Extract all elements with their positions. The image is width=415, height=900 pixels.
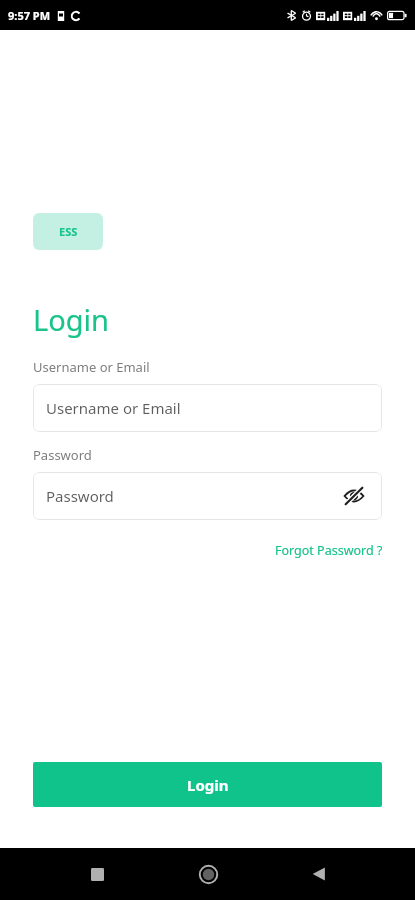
button[interactable]: Recent apps	[78, 855, 116, 893]
staticText: 9:57 PM	[8, 8, 51, 23]
staticText: Login	[33, 300, 109, 339]
staticText: Password	[33, 446, 92, 464]
button[interactable]: Show password	[339, 481, 369, 511]
button[interactable]: Password	[33, 472, 382, 520]
staticText: Forgot Password ?	[275, 542, 383, 559]
staticText: ESS	[59, 224, 78, 239]
staticText: Username or Email	[33, 358, 150, 376]
button[interactable]: Home	[189, 855, 227, 893]
staticText: Password	[46, 486, 339, 506]
button[interactable]: Back	[300, 855, 338, 893]
button[interactable]: Username or Email	[33, 384, 382, 432]
button[interactable]: Login	[33, 762, 382, 807]
button[interactable]: ESS	[33, 213, 103, 250]
staticText: Username or Email	[46, 398, 369, 418]
button[interactable]: Forgot Password ?	[273, 539, 385, 562]
staticText: Login	[187, 775, 229, 795]
